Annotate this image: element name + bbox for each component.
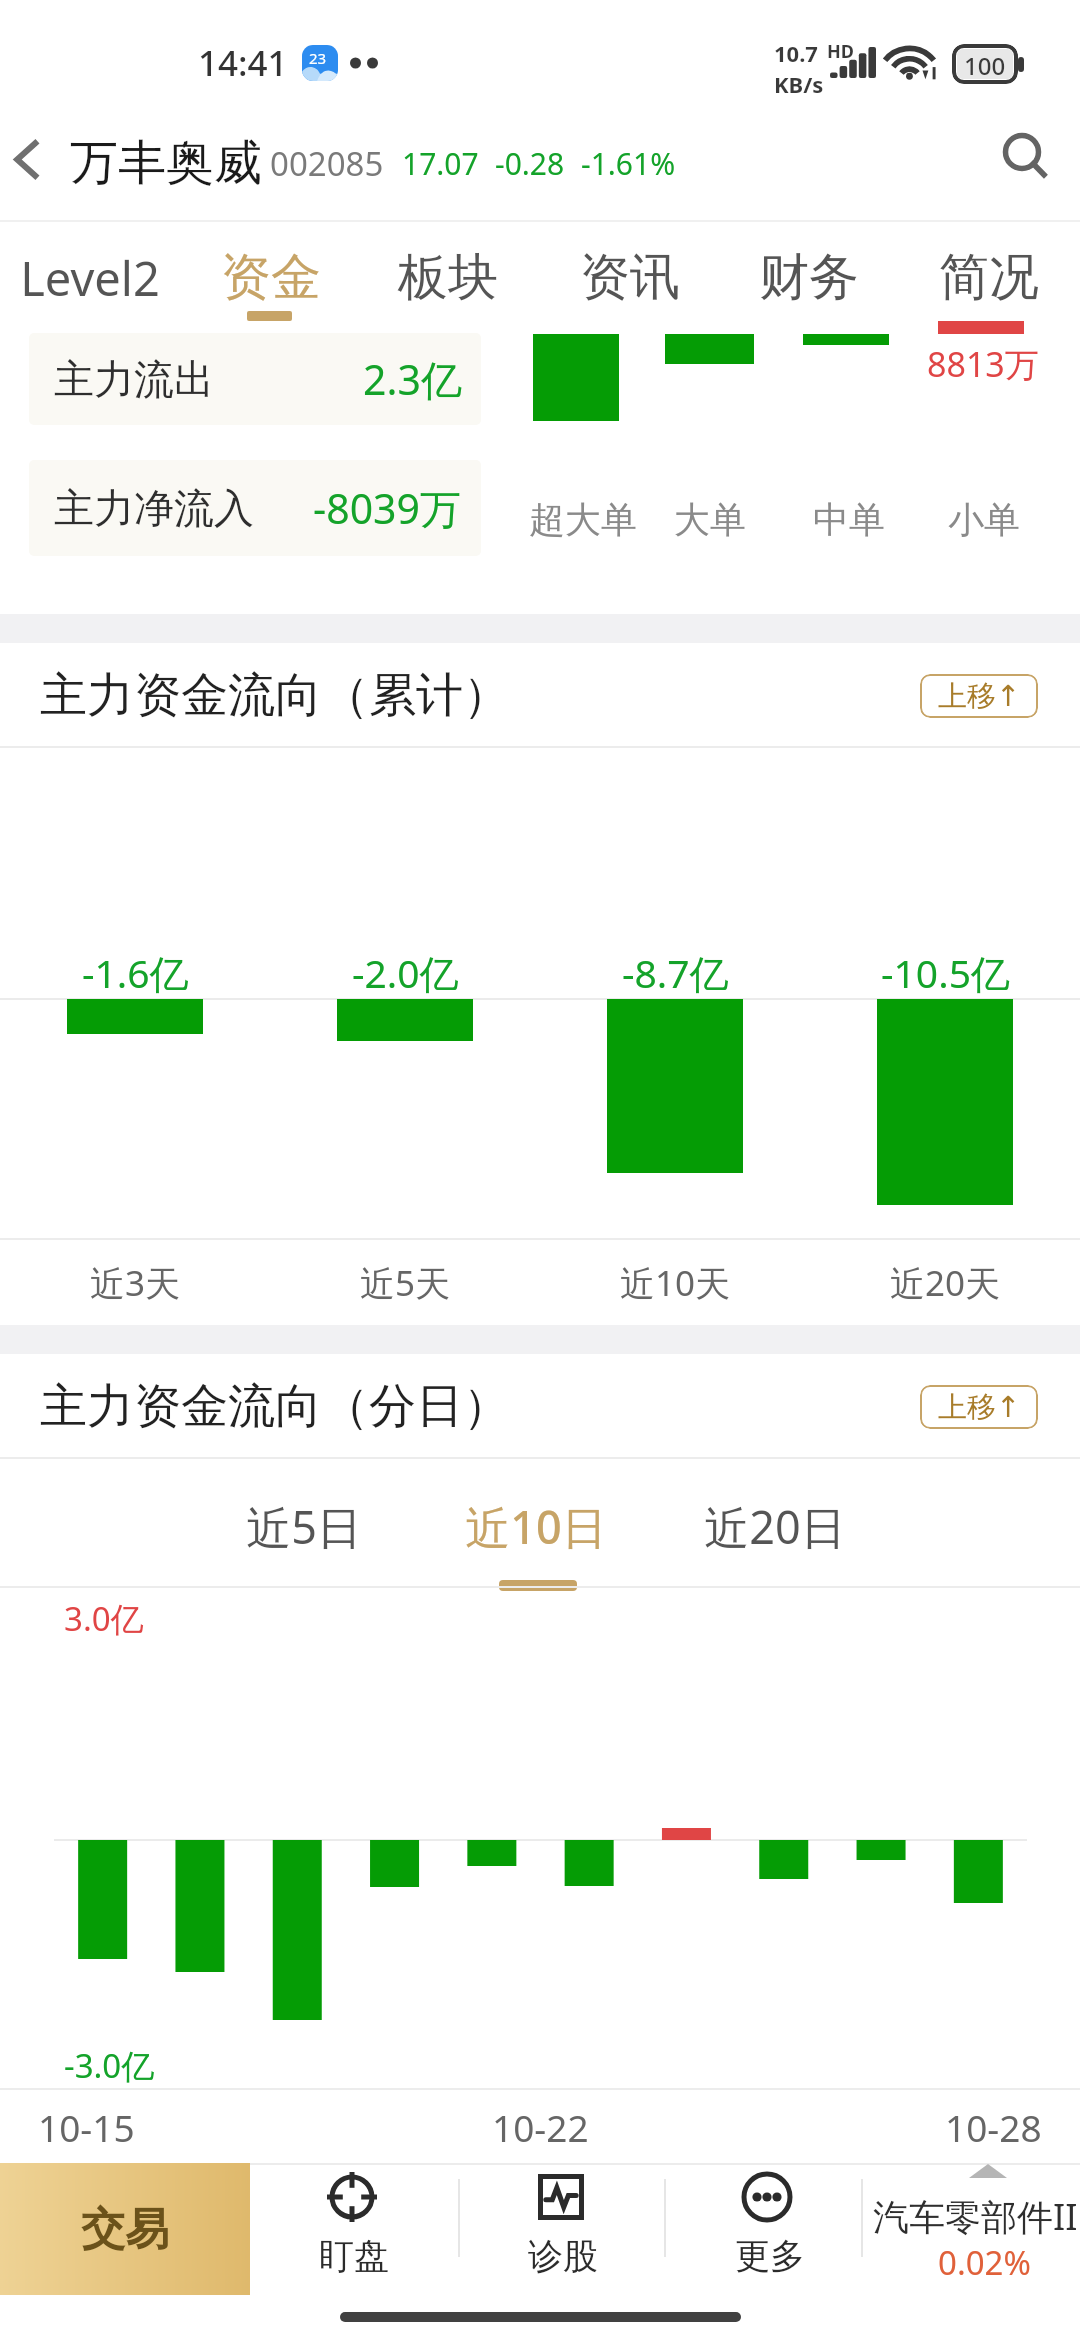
staticText: 上移↑ bbox=[938, 1389, 1021, 1426]
staticText: 近5天 bbox=[360, 1259, 451, 1307]
button[interactable]: 诊股 bbox=[466, 2163, 662, 2295]
staticText: 诊股 bbox=[528, 2234, 598, 2278]
staticText: 10-22 bbox=[492, 2102, 589, 2152]
staticText: -0.28 bbox=[495, 143, 565, 184]
staticText: -1.6亿 bbox=[82, 946, 189, 999]
staticText: 汽车零部件II bbox=[873, 2192, 1078, 2241]
button[interactable]: 资金 bbox=[196, 232, 346, 332]
staticText: 盯盘 bbox=[319, 2234, 389, 2278]
button[interactable]: 简况 bbox=[914, 232, 1064, 332]
staticText: -3.0亿 bbox=[64, 2043, 155, 2088]
staticText: 14:41 bbox=[198, 39, 288, 87]
button[interactable]: 近5日 bbox=[214, 1459, 394, 1586]
staticText: 简况 bbox=[939, 246, 1039, 309]
staticText: 近3天 bbox=[90, 1259, 181, 1307]
staticText: 17.07 bbox=[402, 143, 479, 184]
button[interactable]: 近20日 bbox=[685, 1459, 865, 1586]
staticText: 002085 bbox=[270, 141, 384, 186]
staticText: KB/s bbox=[774, 69, 824, 99]
staticText: 近20日 bbox=[704, 1496, 846, 1557]
staticText: -8.7亿 bbox=[622, 946, 729, 999]
button[interactable]: 板块 bbox=[373, 232, 523, 332]
staticText: 主力流出 bbox=[54, 354, 214, 404]
staticText: 近5日 bbox=[246, 1496, 362, 1557]
staticText: 10.7 bbox=[774, 38, 818, 68]
staticText: 资讯 bbox=[580, 246, 680, 309]
staticText: 交易 bbox=[81, 2202, 169, 2257]
button[interactable]: 上移↑ bbox=[920, 1385, 1038, 1429]
staticText: 8813万 bbox=[927, 341, 1039, 387]
button[interactable]: 盯盘 bbox=[270, 2163, 458, 2295]
button[interactable]: 交易 bbox=[0, 2163, 250, 2295]
staticText: 2.3亿 bbox=[363, 351, 462, 407]
staticText: 近20天 bbox=[890, 1259, 1001, 1307]
staticText: 主力资金流向（累计） bbox=[40, 666, 510, 725]
staticText: HD bbox=[827, 39, 854, 64]
staticText: 10-15 bbox=[38, 2102, 135, 2152]
button[interactable]: Level2 bbox=[15, 232, 165, 332]
staticText: 资金 bbox=[221, 246, 321, 309]
button[interactable]: 资讯 bbox=[555, 232, 705, 332]
button[interactable]: Back bbox=[0, 113, 70, 213]
button[interactable]: 主力净流入 bbox=[29, 460, 481, 556]
staticText: 小单 bbox=[948, 497, 1020, 542]
button[interactable]: 主力流出 bbox=[29, 333, 481, 425]
button[interactable]: Search bbox=[987, 107, 1067, 207]
button[interactable]: 近10日 bbox=[446, 1459, 626, 1586]
staticText: 万丰奥威 bbox=[70, 133, 262, 193]
button[interactable]: 财务 bbox=[734, 232, 884, 332]
staticText: 主力资金流向（分日） bbox=[40, 1377, 510, 1436]
button[interactable]: 上移↑ bbox=[920, 674, 1038, 718]
staticText: 更多 bbox=[735, 2234, 805, 2278]
staticText: 板块 bbox=[398, 246, 498, 309]
staticText: 近10天 bbox=[620, 1259, 731, 1307]
staticText: 上移↑ bbox=[938, 678, 1021, 715]
staticText: 近10日 bbox=[465, 1496, 607, 1557]
button[interactable]: 汽车零部件II bbox=[863, 2163, 1080, 2295]
staticText: 超大单 bbox=[529, 497, 637, 542]
staticText: 3.0亿 bbox=[64, 1596, 144, 1641]
staticText: -8039万 bbox=[313, 480, 462, 536]
staticText: -2.0亿 bbox=[352, 946, 459, 999]
staticText: 财务 bbox=[759, 246, 859, 309]
staticText: 10-28 bbox=[945, 2102, 1042, 2152]
button[interactable]: 更多 bbox=[670, 2163, 861, 2295]
staticText: Level2 bbox=[20, 246, 160, 310]
staticText: -10.5亿 bbox=[881, 946, 1010, 999]
staticText: 主力净流入 bbox=[54, 483, 254, 533]
staticText: -1.61% bbox=[581, 143, 676, 184]
staticText: 中单 bbox=[813, 497, 885, 542]
staticText: 100 bbox=[964, 49, 1006, 79]
staticText: 大单 bbox=[674, 497, 746, 542]
staticText: 23 bbox=[309, 48, 327, 68]
staticText: 0.02% bbox=[938, 2240, 1031, 2285]
